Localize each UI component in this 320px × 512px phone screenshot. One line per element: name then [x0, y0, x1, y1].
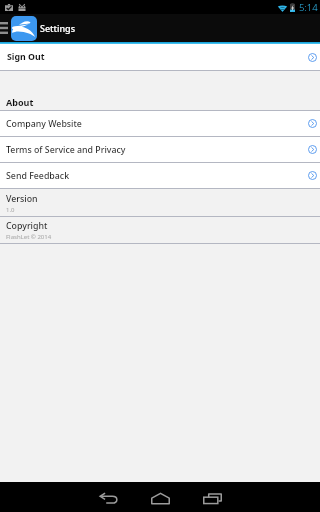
- button[interactable]: Copyright: [0, 217, 320, 243]
- button[interactable]: Company Website: [0, 111, 320, 136]
- staticText: Version: [6, 193, 38, 205]
- staticText: Settings: [40, 22, 76, 34]
- staticText: 5:14: [299, 1, 318, 14]
- staticText: 1.0: [6, 206, 15, 214]
- button[interactable]: Terms of Service and Privacy: [0, 137, 320, 162]
- button[interactable]: Back: [82, 485, 134, 512]
- button[interactable]: Home: [134, 485, 186, 512]
- staticText: Terms of Service and Privacy: [6, 144, 308, 156]
- staticText: Sign Out: [7, 51, 308, 63]
- staticText: FlashLet © 2014: [6, 233, 52, 241]
- button[interactable]: Open navigation drawer: [0, 14, 11, 42]
- staticText: Send Feedback: [6, 170, 308, 182]
- staticText: About: [6, 96, 34, 108]
- staticText: Company Website: [6, 118, 308, 130]
- button[interactable]: Recent apps: [186, 485, 238, 512]
- button[interactable]: Sign Out: [0, 44, 320, 70]
- staticText: Copyright: [6, 220, 48, 232]
- button[interactable]: Version: [0, 189, 320, 216]
- button[interactable]: Send Feedback: [0, 163, 320, 188]
